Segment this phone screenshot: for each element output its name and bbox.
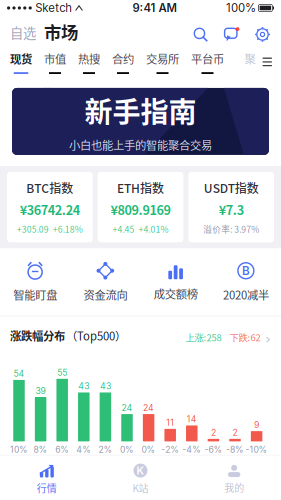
button[interactable]: 上涨:258	[185, 330, 271, 344]
button[interactable]: USDT指数	[188, 172, 274, 242]
staticText: 0%	[120, 444, 134, 455]
staticText: 市值	[44, 50, 66, 67]
staticText: 55	[57, 367, 67, 378]
staticText: -4%	[182, 444, 201, 455]
staticText: 我的	[224, 480, 244, 495]
button[interactable]: 资金流向	[70, 261, 140, 303]
staticText: 合约	[112, 50, 134, 67]
staticText: ¥36742.24	[20, 200, 80, 219]
staticText: 交易所	[146, 50, 179, 67]
staticText: 4%	[76, 444, 91, 455]
button[interactable]: 热搜	[66, 50, 100, 74]
button[interactable]: 合约	[100, 50, 134, 74]
button[interactable]: 行情	[0, 464, 94, 495]
staticText: 2020减半	[223, 286, 269, 303]
button[interactable]: 市值	[32, 50, 66, 74]
staticText: 涨跌幅分布	[10, 327, 65, 344]
staticText: ETH指数	[117, 179, 164, 196]
staticText: 新手指南	[84, 90, 196, 130]
staticText: 平台币	[191, 50, 224, 67]
staticText: 下跌:62	[229, 330, 260, 344]
staticText: 100%	[226, 1, 256, 15]
staticText: -6%	[204, 444, 222, 455]
staticText: 10%	[10, 444, 28, 455]
staticText: ¥809.9169	[110, 200, 170, 219]
button[interactable]: 现货	[10, 50, 32, 74]
staticText: 14	[187, 414, 197, 424]
button[interactable]: 市场	[36, 19, 78, 44]
staticText: -10%	[246, 444, 268, 455]
button[interactable]: B	[211, 261, 281, 303]
button[interactable]: 搜索	[193, 27, 208, 44]
staticText: 54	[13, 368, 24, 379]
button[interactable]: K	[94, 464, 187, 495]
staticText: 9	[254, 420, 259, 430]
staticText: 上涨:258	[185, 330, 221, 344]
staticText: 2	[232, 427, 237, 438]
staticText: 现货	[10, 50, 32, 67]
staticText: K站	[132, 481, 148, 495]
staticText: ¥7.3	[219, 200, 244, 219]
staticText: 43	[78, 381, 89, 391]
staticText: 聚	[244, 50, 255, 67]
staticText: +4.45 +4.01%	[112, 223, 168, 235]
staticText: 资金流向	[83, 286, 127, 303]
staticText: 成交额榜	[154, 285, 198, 302]
staticText: 市场	[44, 19, 78, 44]
staticText: USDT指数	[204, 179, 259, 196]
staticText: 0%	[142, 444, 156, 455]
staticText: 11	[166, 417, 174, 428]
staticText: 热搜	[78, 50, 100, 67]
staticText: 自选	[10, 23, 36, 42]
staticText: 2%	[98, 444, 112, 455]
button[interactable]: 智能盯盘	[0, 261, 70, 303]
button[interactable]: 成交额榜	[140, 262, 211, 302]
staticText: 2	[211, 427, 216, 438]
staticText: 小白也能上手的智能聚合交易	[69, 136, 212, 153]
staticText: +305.09 +6.18%	[17, 223, 83, 235]
staticText: 溢价率: 3.97%	[203, 223, 259, 235]
button[interactable]: 我的	[187, 464, 281, 495]
staticText: 43	[100, 381, 111, 391]
button[interactable]: 更多分类	[255, 57, 272, 74]
button[interactable]: 新手指南	[0, 74, 281, 166]
staticText: 8%	[34, 444, 48, 455]
staticText: -2%	[161, 444, 179, 455]
staticText: 39	[36, 385, 46, 396]
staticText: 24	[121, 403, 132, 413]
button[interactable]: 交易所	[134, 50, 179, 74]
button[interactable]: 消息	[208, 27, 239, 44]
button[interactable]: ETH指数	[98, 172, 183, 242]
staticText: 9:41 AM	[133, 1, 177, 15]
staticText: 智能盯盘	[13, 286, 57, 303]
button[interactable]: 平台币	[179, 50, 224, 74]
staticText: 行情	[37, 481, 57, 495]
staticText: BTC指数	[26, 179, 73, 196]
button[interactable]: 自选	[10, 23, 36, 44]
staticText: Sketch	[35, 1, 72, 15]
button[interactable]: BTC指数	[7, 172, 93, 242]
button[interactable]: 设置	[239, 27, 270, 44]
staticText: K	[136, 464, 144, 477]
staticText: B	[242, 264, 250, 278]
staticText: （Top500）	[66, 327, 126, 344]
staticText: 24	[143, 403, 154, 413]
staticText: 6%	[55, 444, 69, 455]
staticText: -8%	[226, 444, 244, 455]
